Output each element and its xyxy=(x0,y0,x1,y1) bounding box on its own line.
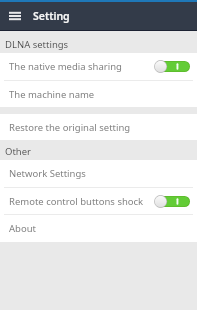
button[interactable]: About xyxy=(0,215,197,242)
button[interactable]: Open navigation menu xyxy=(0,2,30,30)
staticText: Network Settings xyxy=(9,167,86,180)
staticText: Other xyxy=(5,145,32,158)
staticText: DLNA settings xyxy=(5,38,69,51)
staticText: The machine name xyxy=(9,88,95,101)
staticText: About xyxy=(9,222,36,235)
button[interactable]: Remote control buttons shock xyxy=(0,188,197,214)
button[interactable]: The machine name xyxy=(0,81,197,107)
staticText: Setting xyxy=(33,9,70,23)
staticText: Remote control buttons shock xyxy=(9,195,154,208)
button[interactable]: Restore the original setting xyxy=(0,114,197,140)
staticText: The native media sharing xyxy=(9,60,154,73)
staticText: Restore the original setting xyxy=(9,121,131,134)
button[interactable]: The native media sharing xyxy=(0,53,197,80)
button[interactable]: Network Settings xyxy=(0,160,197,187)
